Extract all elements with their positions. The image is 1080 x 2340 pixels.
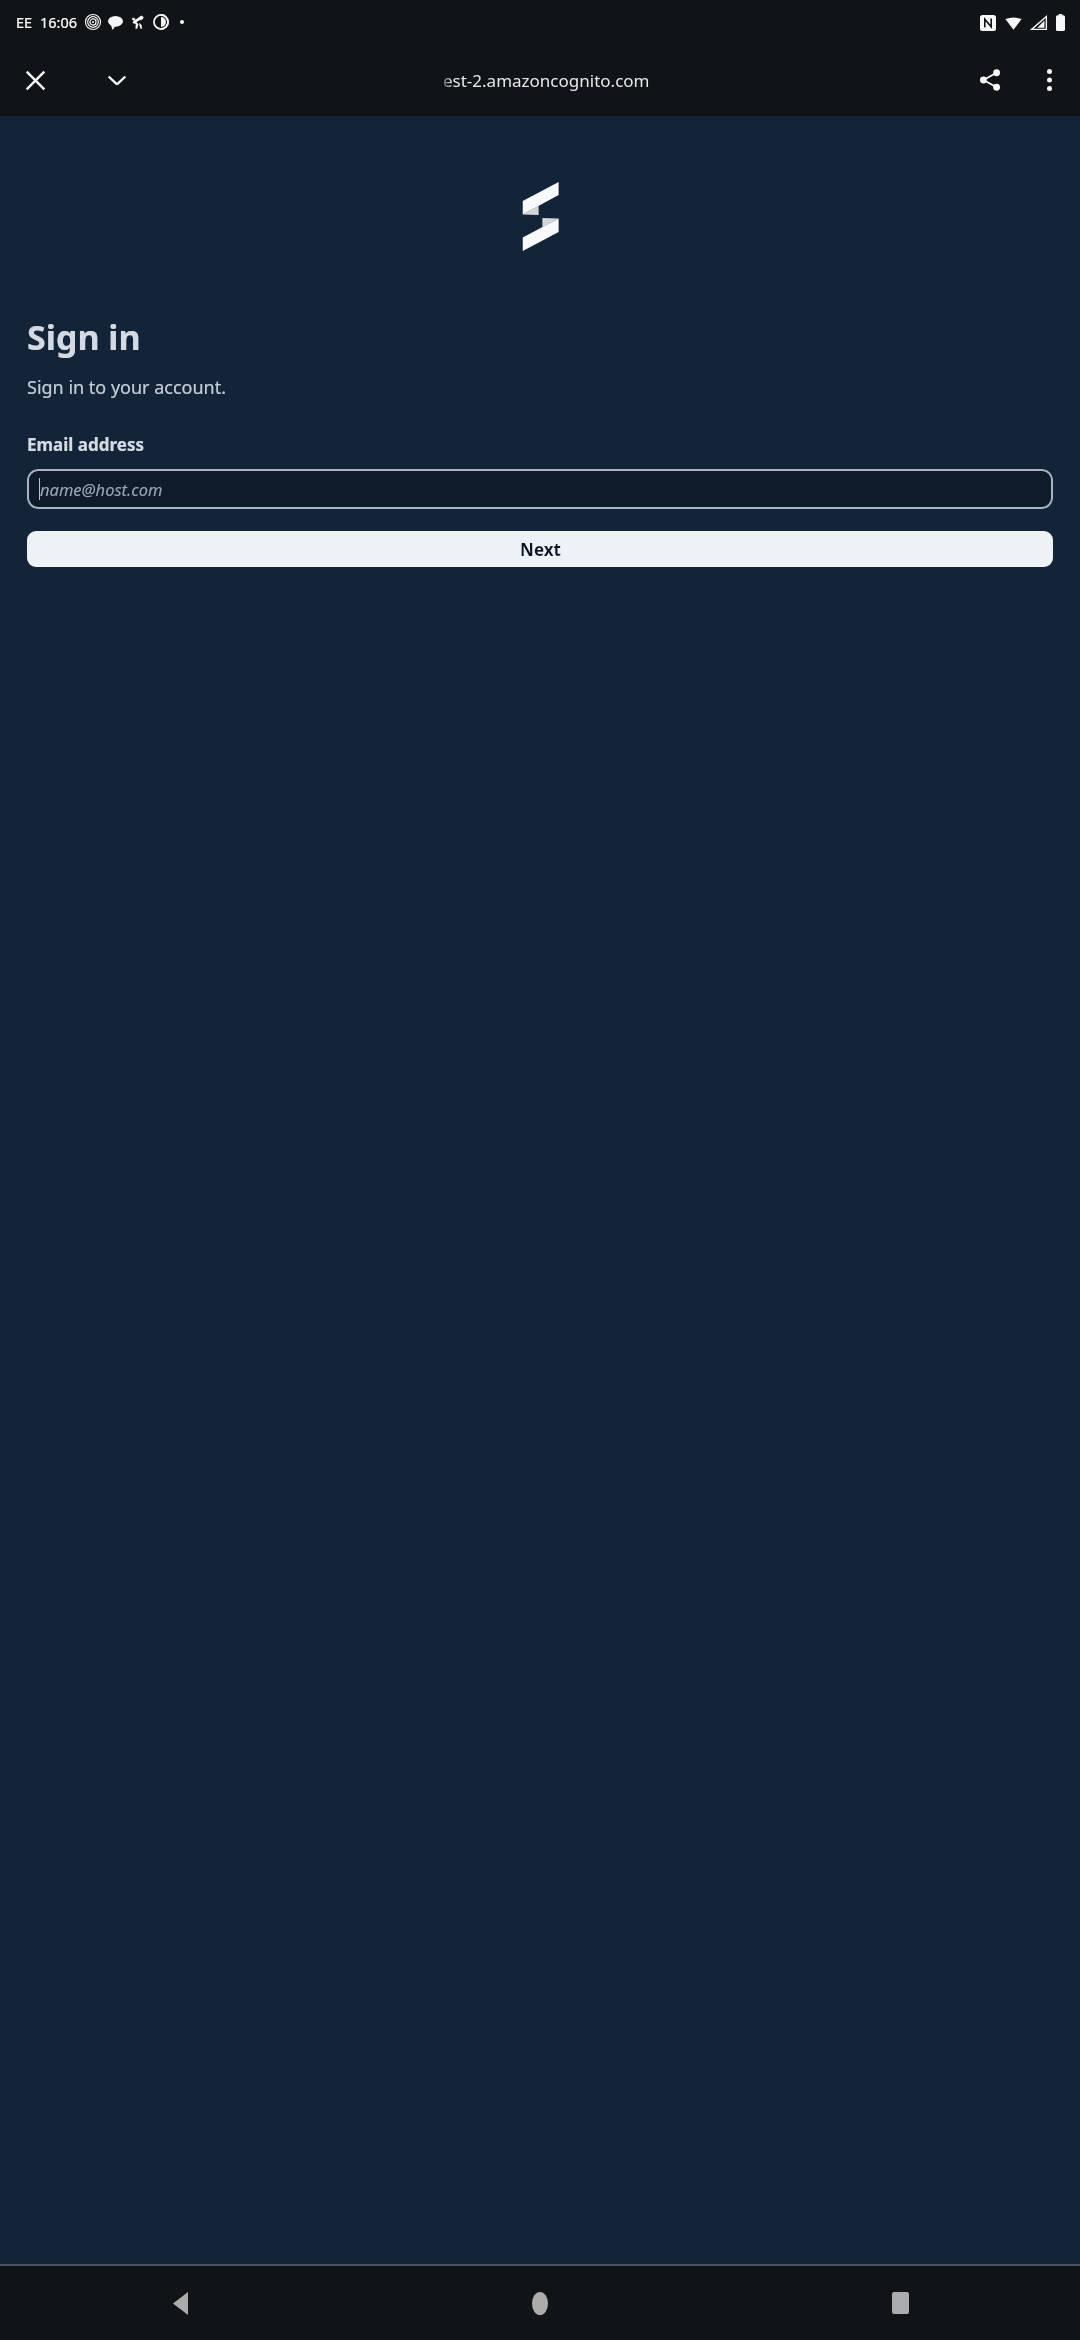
button[interactable]: Back [0, 2266, 360, 2340]
button[interactable]: Recent apps [720, 2266, 1080, 2340]
button[interactable]: name@host.com [27, 469, 1053, 509]
staticText: EE [16, 12, 33, 32]
button[interactable]: Home [360, 2266, 720, 2340]
staticText: Sign in to your account. [27, 375, 227, 400]
button[interactable]: Share [963, 53, 1017, 107]
staticText: Email address [27, 433, 144, 456]
button[interactable]: Next [27, 531, 1053, 567]
staticText: Sign in [27, 314, 141, 360]
button[interactable]: Close [8, 53, 62, 107]
staticText: 16:06 [40, 12, 78, 32]
staticText: Next [520, 538, 561, 561]
staticText: name@host.com [40, 478, 163, 500]
staticText: est-2.amazoncognito.com [443, 69, 650, 92]
button[interactable]: More options [1022, 53, 1076, 107]
button[interactable]: Show more [90, 53, 144, 107]
